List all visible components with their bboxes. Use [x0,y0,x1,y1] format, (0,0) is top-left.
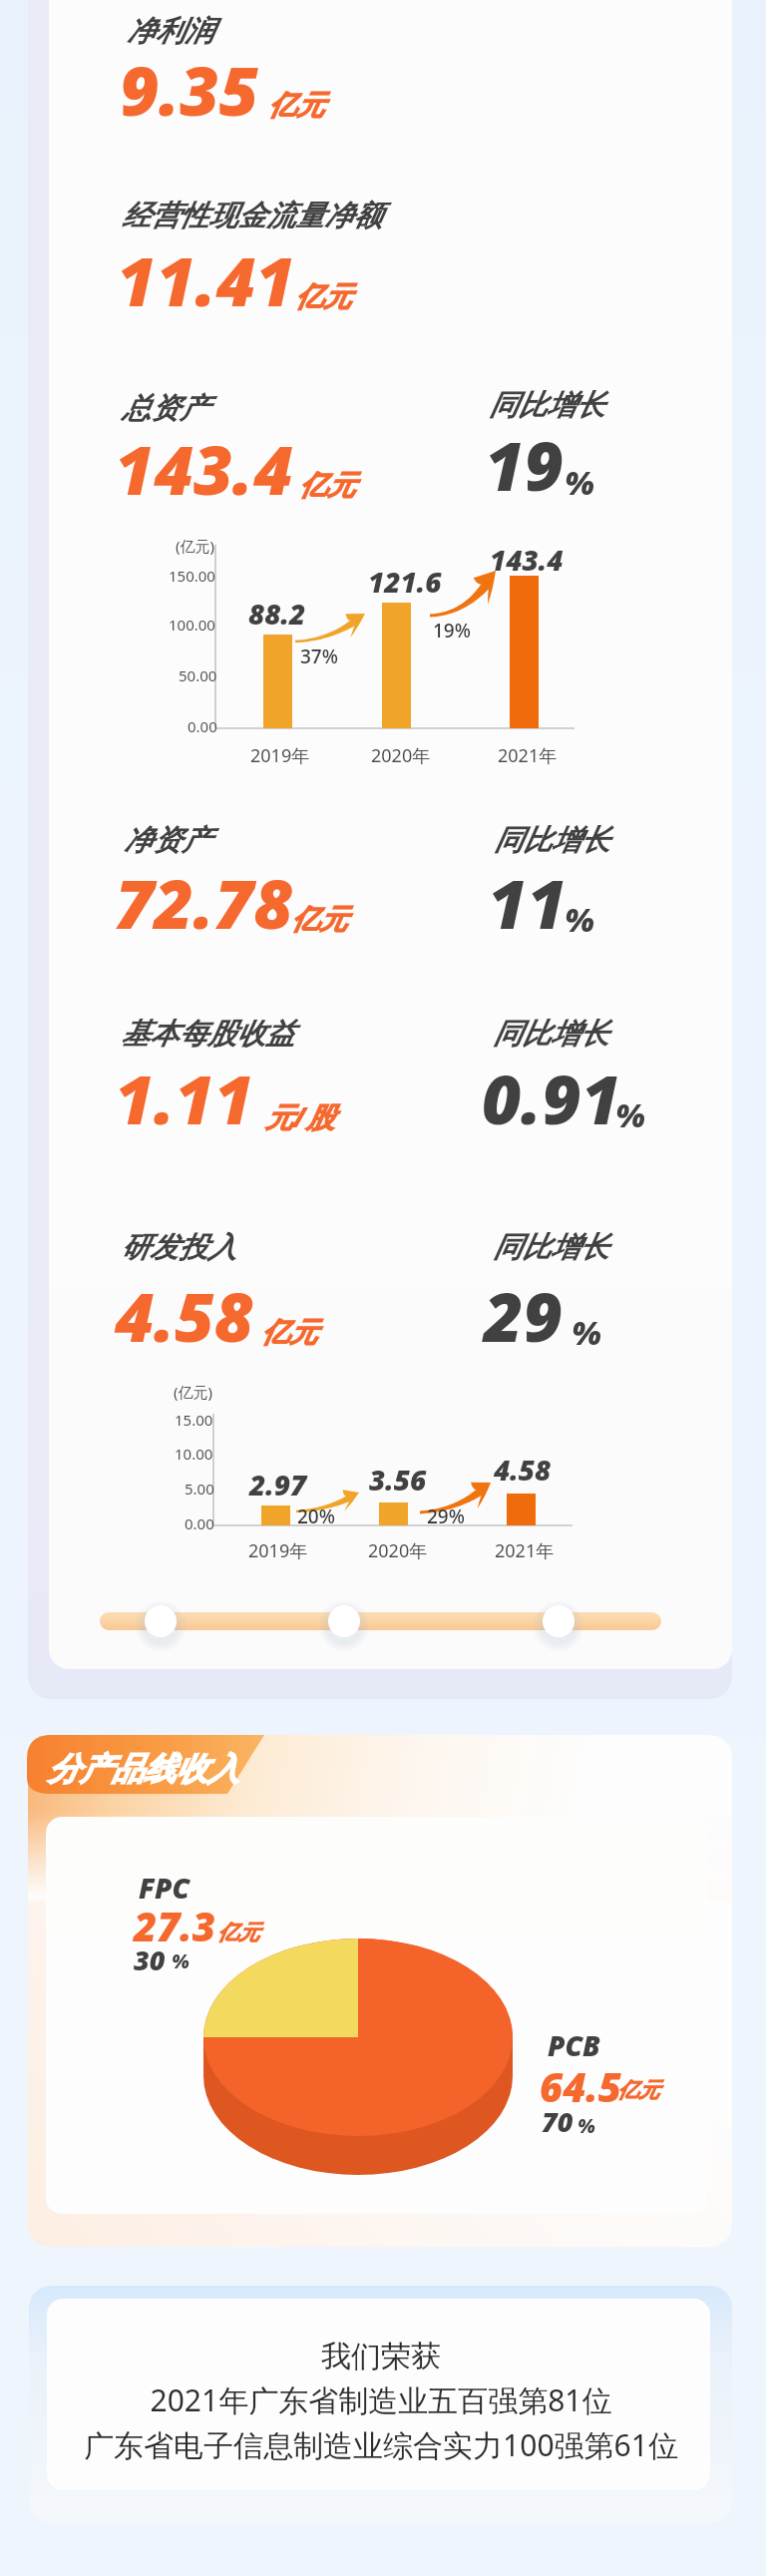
staticText: 3.56 [369,1461,427,1499]
staticText: 同比增长 [494,822,609,859]
button[interactable]: 净利润 [0,0,766,2576]
staticText: 净利润 [127,13,213,50]
staticText: % [172,1948,190,1974]
staticText: 9.35 [120,43,259,136]
staticText: 11.41 [117,233,295,326]
staticText: % [565,898,594,942]
staticText: 基本每股收益 [121,1016,294,1053]
staticText: 亿元 [261,1315,317,1350]
staticText: 同比增长 [493,1229,608,1266]
staticText: 研发投入 [121,1229,236,1266]
staticText: 亿元 [299,468,355,503]
staticText: 27.3 [134,1899,215,1952]
staticText: 亿元 [217,1920,259,1945]
staticText: 亿元 [617,2077,659,2103]
staticText: 150.00 [169,566,215,586]
staticText: 88.2 [248,595,306,633]
staticText: 同比增长 [493,1016,608,1053]
staticText: 29% [427,1503,465,1529]
staticText: 经营性现金流量净额 [122,198,382,234]
staticText: 亿元 [291,902,347,937]
staticText: 净资产 [124,822,210,859]
staticText: % [577,2113,595,2139]
staticText: 143.4 [115,422,293,515]
staticText: 100.00 [169,615,215,635]
staticText: 2019年 [248,1538,308,1563]
staticText: 0.91 [482,1052,621,1144]
staticText: 20% [297,1503,335,1529]
staticText: 亿元 [295,279,351,314]
staticText: FPC [139,1869,191,1907]
staticText: % [572,1311,601,1355]
staticText: (亿元) [176,536,215,556]
staticText: 11 [488,856,567,949]
staticText: 37% [300,644,338,669]
staticText: 2020年 [368,1538,428,1563]
staticText: 4.58 [115,1269,254,1362]
staticText: 19% [433,618,471,644]
staticText: 0.00 [188,716,217,736]
staticText: 分产品线收入 [48,1749,239,1789]
staticText: 19 [485,418,564,511]
staticText: 2.97 [249,1466,307,1503]
staticText: 70 [542,2103,574,2140]
staticText: 0.00 [185,1513,214,1533]
staticText: 5.00 [185,1479,214,1499]
staticText: 2021年 [498,743,558,768]
staticText: 元/股 [265,1097,335,1135]
staticText: 同比增长 [489,387,604,424]
staticText: 2021年 [495,1538,555,1563]
staticText: 4.58 [494,1451,552,1489]
staticText: 29 [484,1269,563,1362]
staticText: PCB [548,2026,600,2064]
staticText: 1.11 [115,1052,254,1144]
staticText: 10.00 [175,1444,213,1464]
staticText: 121.6 [368,563,442,601]
staticText: % [565,461,594,505]
staticText: 2019年 [250,743,310,768]
staticText: 143.4 [490,541,564,579]
staticText: 72.78 [115,856,293,949]
staticText: 15.00 [175,1410,213,1430]
staticText: 我们荣获 2021年广东省制造业五百强第81位 广东省电子信息制造业综合实力10… [84,2338,678,2465]
staticText: 亿元 [268,88,324,123]
staticText: 2020年 [371,743,431,768]
staticText: % [615,1093,645,1137]
staticText: 30 [134,1941,166,1978]
staticText: 64.5 [540,2059,621,2113]
staticText: (亿元) [174,1382,213,1402]
staticText: 50.00 [179,665,217,685]
staticText: 总资产 [122,390,208,427]
